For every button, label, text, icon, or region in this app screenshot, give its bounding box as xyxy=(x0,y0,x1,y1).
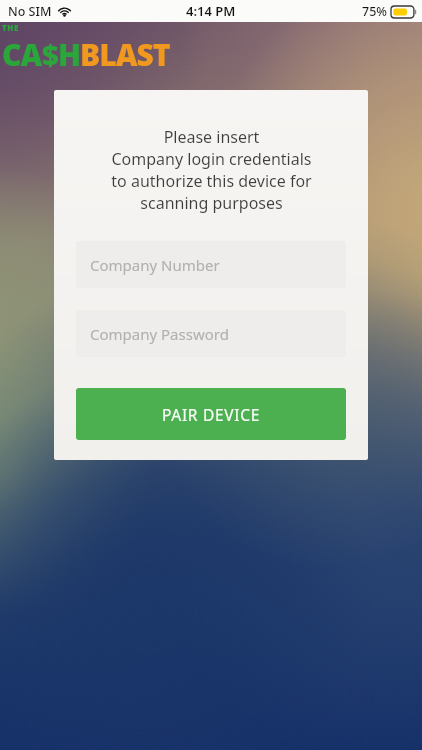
staticText: PAIR DEVICE xyxy=(162,404,261,425)
staticText: CA xyxy=(2,34,42,75)
staticText: Company Number xyxy=(90,255,220,275)
button[interactable]: Pair device xyxy=(76,388,346,440)
button[interactable]: Company Number xyxy=(76,241,346,288)
staticText: 75% xyxy=(362,3,387,20)
staticText: $ xyxy=(42,35,58,74)
staticText: Company Password xyxy=(90,324,229,344)
staticText: 4:14 PM xyxy=(186,2,236,20)
staticText: H xyxy=(58,34,80,75)
staticText: BLAST xyxy=(80,34,170,75)
staticText: THE xyxy=(2,22,20,33)
staticText: Please insert Company login credentials … xyxy=(111,126,312,214)
staticText: No SIM xyxy=(8,3,52,20)
button[interactable]: Company Password xyxy=(76,310,346,357)
